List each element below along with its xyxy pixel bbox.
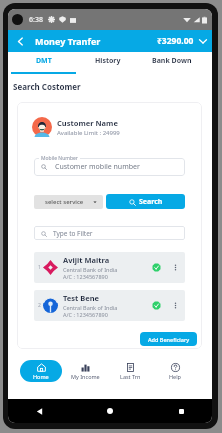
staticText: 6:38 <box>29 15 43 25</box>
button[interactable]: Bank Down <box>140 52 204 74</box>
button[interactable]: Recents <box>174 404 188 418</box>
staticText: A/C : 1234567890 <box>63 311 108 318</box>
button[interactable]: 1 <box>34 252 185 283</box>
button[interactable]: More options <box>170 262 181 273</box>
button[interactable]: More options <box>170 300 181 311</box>
staticText: Last Trn <box>120 373 141 380</box>
button[interactable]: Back <box>12 33 28 49</box>
staticText: My Income <box>71 373 100 380</box>
staticText: DMT <box>36 56 52 66</box>
button[interactable]: Customer mobile number <box>34 158 185 176</box>
staticText: 1 <box>38 264 41 271</box>
staticText: Avijit Maitra <box>63 255 110 265</box>
staticText: History <box>95 56 121 66</box>
button[interactable]: Last Trn <box>109 360 151 382</box>
button[interactable]: Home <box>20 360 62 382</box>
staticText: ₹3290.00 <box>157 35 194 47</box>
button[interactable]: ₹3290.00 <box>157 35 208 47</box>
staticText: Money Tranfer <box>35 35 101 47</box>
button[interactable]: select service <box>34 195 103 209</box>
staticText: 2 <box>38 302 41 309</box>
button[interactable]: Type to Filter <box>34 226 185 240</box>
staticText: Customer Name <box>57 118 118 128</box>
staticText: Type to Filter <box>53 229 93 238</box>
staticText: Home <box>33 373 49 380</box>
button[interactable]: My Income <box>64 360 106 382</box>
button[interactable]: Help <box>154 360 196 382</box>
staticText: Test Bene <box>63 293 100 303</box>
staticText: A/C : 1234567890 <box>63 273 108 280</box>
button[interactable]: DMT <box>11 52 76 74</box>
staticText: Mobile Number <box>41 155 78 162</box>
staticText: Available Limit : 24999 <box>57 129 120 137</box>
staticText: Add Beneficiary <box>148 336 190 343</box>
staticText: Search Costomer <box>13 81 81 92</box>
button[interactable]: History <box>76 52 140 74</box>
staticText: Central Bank of India <box>63 304 118 311</box>
staticText: Bank Down <box>152 56 192 66</box>
staticText: select service <box>45 198 84 206</box>
staticText: Customer mobile number <box>55 162 140 172</box>
button[interactable]: 2 <box>34 290 185 321</box>
button[interactable]: Home <box>103 404 117 418</box>
button[interactable]: Add Beneficiary <box>140 332 197 346</box>
button[interactable]: Search <box>106 194 185 209</box>
staticText: Central Bank of India <box>63 266 118 273</box>
button[interactable]: Back <box>32 404 46 418</box>
staticText: Help <box>169 373 181 380</box>
staticText: Search <box>139 197 163 207</box>
